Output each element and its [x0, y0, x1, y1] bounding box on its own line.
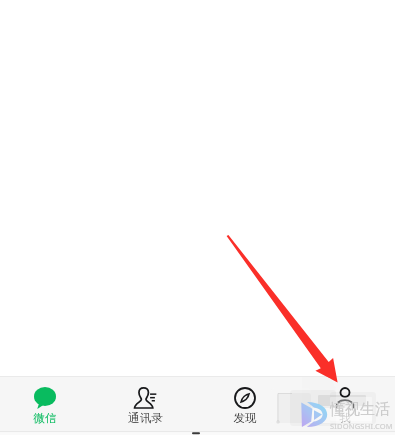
button[interactable]: Chats: [0, 377, 90, 435]
other: Me: [334, 387, 356, 409]
staticText: 通讯录: [128, 411, 163, 426]
other: Discover: [234, 387, 256, 409]
staticText: 我: [339, 411, 351, 426]
button[interactable]: Contacts: [100, 377, 190, 435]
staticText: 发现: [233, 411, 257, 426]
other: Contacts: [134, 387, 156, 409]
staticText: 微信: [33, 411, 57, 426]
button[interactable]: Discover: [200, 377, 290, 435]
other: Chats: [34, 387, 56, 409]
staticText: 懂视生活: [330, 400, 390, 419]
staticText: SIDONGSHI.COM: [330, 421, 393, 431]
button[interactable]: Me: [300, 377, 390, 435]
